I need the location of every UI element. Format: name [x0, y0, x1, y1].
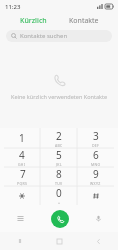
button[interactable]: Call: [51, 210, 69, 228]
button[interactable]: Home: [40, 232, 79, 250]
button[interactable]: 4: [4, 148, 40, 167]
button[interactable]: Keypad: [0, 205, 40, 232]
staticText: 2: [56, 129, 62, 143]
staticText: 4: [19, 148, 25, 162]
staticText: 8: [56, 167, 62, 181]
button[interactable]: 6: [77, 148, 114, 167]
button[interactable]: Voice search: [79, 205, 118, 232]
button[interactable]: Kontakte suchen: [6, 30, 112, 42]
button[interactable]: 1: [4, 128, 40, 148]
button[interactable]: [4, 186, 40, 205]
staticText: 5: [56, 148, 62, 162]
button[interactable]: Recents: [0, 232, 40, 250]
staticText: DEF: [92, 143, 100, 148]
button[interactable]: 7: [4, 167, 40, 186]
button[interactable]: 3: [77, 128, 114, 148]
staticText: 6: [93, 148, 99, 162]
staticText: Kontakte suchen: [20, 32, 68, 40]
staticText: Kürzlich: [20, 16, 47, 26]
staticText: 1: [19, 131, 25, 145]
staticText: JKL: [56, 162, 62, 167]
button[interactable]: Kontakte: [65, 14, 103, 28]
staticText: Keine kürzlich verwendeten Kontakte: [11, 93, 107, 100]
button[interactable]: 9: [77, 167, 114, 186]
staticText: 9: [93, 167, 99, 181]
staticText: +: [58, 200, 61, 205]
staticText: TUV: [55, 181, 63, 186]
staticText: 3: [93, 129, 99, 143]
button[interactable]: Kürzlich: [16, 14, 51, 28]
staticText: 0: [56, 186, 62, 200]
staticText: 11:23: [5, 3, 21, 11]
staticText: GHI: [18, 162, 26, 167]
staticText: PQRS: [17, 181, 28, 186]
staticText: Kontakte: [69, 16, 99, 26]
staticText: WXYZ: [90, 181, 101, 186]
button[interactable]: 5: [40, 148, 77, 167]
button[interactable]: 0: [40, 186, 77, 205]
button[interactable]: 2: [40, 128, 77, 148]
button[interactable]: 8: [40, 167, 77, 186]
staticText: 7: [20, 167, 26, 181]
staticText: ABC: [55, 143, 63, 148]
staticText: MNO: [91, 162, 101, 167]
button[interactable]: [77, 186, 114, 205]
